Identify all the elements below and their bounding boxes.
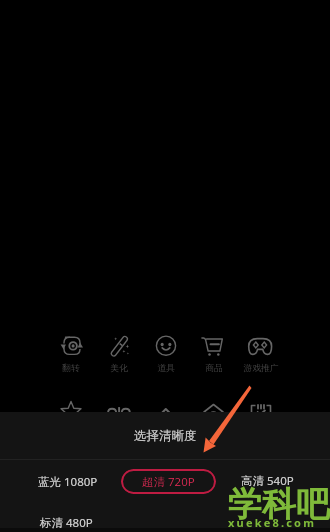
button[interactable]: 道具 <box>144 334 188 374</box>
button[interactable]: more tool 2 <box>103 396 135 416</box>
staticText: 蓝光 1080P <box>38 474 98 490</box>
staticText: 翻转 <box>62 363 80 374</box>
staticText: 道具 <box>157 363 175 374</box>
button[interactable]: 翻转 <box>49 334 93 374</box>
button[interactable]: 游戏推广 <box>239 334 283 374</box>
staticText: 游戏推广 <box>243 363 279 374</box>
staticText: 学科吧 <box>228 483 330 526</box>
button[interactable]: 标清 480P <box>33 512 99 532</box>
button[interactable]: 商品 <box>192 334 236 374</box>
button[interactable]: 蓝光 1080P <box>32 469 104 495</box>
staticText: 选择清晰度 <box>134 428 197 444</box>
button[interactable]: 高清 540P <box>234 468 300 494</box>
button[interactable]: 超清 720P <box>121 469 216 494</box>
button[interactable]: more tool 1 <box>55 396 87 416</box>
staticText: 美化 <box>110 363 128 374</box>
staticText: xueke8.com <box>228 515 317 530</box>
staticText: 标清 480P <box>40 515 93 531</box>
staticText: 商品 <box>205 363 223 374</box>
button[interactable]: more tool 4 <box>198 396 230 416</box>
button[interactable]: more tool 3 <box>150 396 182 416</box>
staticText: 超清 720P <box>142 474 195 490</box>
button[interactable]: 美化 <box>97 334 141 374</box>
button[interactable]: more tool 5 <box>245 396 277 416</box>
staticText: 高清 540P <box>241 473 294 489</box>
